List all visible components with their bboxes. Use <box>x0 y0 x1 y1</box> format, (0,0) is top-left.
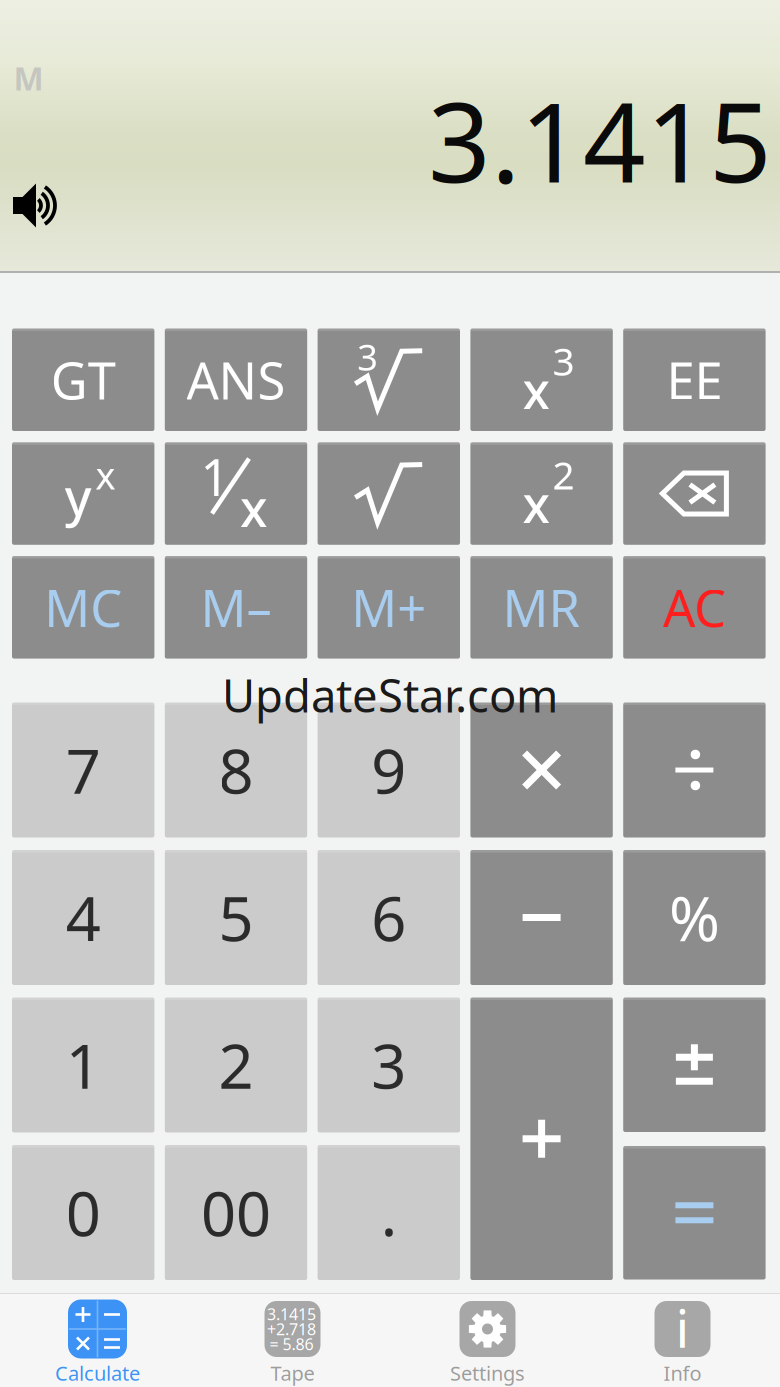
staticText: 6 <box>371 877 406 958</box>
button[interactable]: 1 <box>12 997 154 1132</box>
button[interactable]: 7 <box>12 702 154 837</box>
staticText: 0 <box>66 1172 101 1253</box>
staticText: Calculate <box>55 1360 140 1386</box>
staticText: 2 <box>218 1024 253 1106</box>
button[interactable]: Memory clear <box>12 556 154 659</box>
staticText: UpdateStar.com <box>222 665 558 725</box>
button[interactable]: Backspace <box>623 442 766 545</box>
staticText: x <box>240 474 268 541</box>
button[interactable]: . <box>318 1145 460 1280</box>
staticText: = 5.86 <box>269 1333 313 1355</box>
button[interactable]: Calculate <box>0 1294 195 1387</box>
button[interactable]: 0 <box>12 1145 154 1280</box>
staticText: 1 <box>66 1024 101 1106</box>
staticText: 2 <box>553 449 575 500</box>
staticText: Settings <box>450 1360 525 1386</box>
staticText: 9 <box>371 729 406 811</box>
staticText: 4 <box>66 877 101 958</box>
staticText: ANS <box>186 346 285 413</box>
staticText: 1 <box>200 443 229 510</box>
staticText: M+ <box>351 574 426 641</box>
button[interactable]: 8 <box>165 702 307 837</box>
staticText: MC <box>44 574 122 641</box>
button[interactable]: Add <box>470 997 613 1280</box>
staticText: GT <box>51 346 116 413</box>
staticText: Tape <box>270 1360 314 1386</box>
button[interactable]: Cube root <box>318 328 460 431</box>
button[interactable]: ANS <box>165 328 307 431</box>
button[interactable]: Memory plus <box>318 556 460 659</box>
button[interactable]: 9 <box>318 702 460 837</box>
staticText: 3 <box>357 333 378 381</box>
button[interactable]: 6 <box>318 850 460 985</box>
button[interactable]: x cubed <box>470 328 613 431</box>
button[interactable]: x squared <box>470 442 613 545</box>
button[interactable]: Square root <box>318 442 460 545</box>
staticText: AC <box>663 574 726 641</box>
button[interactable]: 5 <box>165 850 307 985</box>
staticText: % <box>669 877 720 958</box>
button[interactable]: EE <box>623 328 766 431</box>
staticText: x <box>523 470 551 537</box>
button[interactable]: 00 <box>165 1145 307 1280</box>
staticText: 00 <box>201 1172 271 1253</box>
button[interactable]: 2 <box>165 997 307 1132</box>
staticText: 3 <box>371 1024 406 1106</box>
staticText: 3.1415 <box>267 1303 316 1325</box>
button[interactable]: Subtract <box>470 850 613 985</box>
staticText: EE <box>666 346 722 413</box>
staticText: i <box>675 1292 689 1362</box>
staticText: Info <box>663 1360 701 1386</box>
staticText: 8 <box>218 729 253 811</box>
staticText: x <box>95 449 115 500</box>
button[interactable]: Divide <box>623 702 766 837</box>
button[interactable]: 3 <box>318 997 460 1132</box>
button[interactable]: Equals <box>623 1146 766 1279</box>
staticText: MR <box>503 574 581 641</box>
button[interactable]: Memory recall <box>470 556 613 659</box>
button[interactable]: Memory minus <box>165 556 307 659</box>
button[interactable]: Percent <box>623 850 766 985</box>
button[interactable]: Settings <box>390 1294 585 1387</box>
staticText: x <box>523 356 551 423</box>
button[interactable]: One over x <box>165 442 307 545</box>
staticText: y <box>65 463 92 530</box>
button[interactable]: GT <box>12 328 154 431</box>
button[interactable]: All clear <box>623 556 766 659</box>
staticText: 3.1415 <box>428 67 772 213</box>
staticText: +2.718 <box>267 1318 316 1340</box>
staticText: 5 <box>218 877 253 958</box>
staticText: M <box>13 57 43 99</box>
staticText: . <box>381 1172 397 1253</box>
button[interactable]: 4 <box>12 850 154 985</box>
button[interactable]: i <box>585 1294 780 1387</box>
button[interactable]: Multiply <box>470 702 613 837</box>
staticText: 3 <box>553 335 575 386</box>
button[interactable]: y to the power of x <box>12 442 154 545</box>
button[interactable]: 3.1415 <box>195 1294 390 1387</box>
staticText: 7 <box>66 729 101 811</box>
button[interactable]: Plus or minus <box>623 997 766 1132</box>
button[interactable]: Sound <box>5 175 65 235</box>
staticText: M– <box>200 574 271 641</box>
